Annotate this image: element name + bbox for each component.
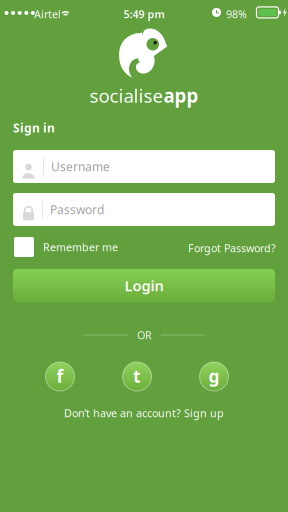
staticText: Airtel <box>34 7 61 21</box>
button[interactable]: Password <box>13 193 275 226</box>
staticText: Username <box>51 158 110 174</box>
button[interactable]: Login <box>13 269 275 302</box>
staticText: Remember me <box>43 240 118 254</box>
staticText: 5:49 pm <box>123 7 164 21</box>
staticText: Forgot Password? <box>188 241 276 255</box>
staticText: socialise <box>89 83 163 108</box>
button[interactable]: Sign in with Facebook <box>45 362 74 391</box>
button[interactable]: Remember me <box>14 237 118 257</box>
staticText: f <box>56 364 63 387</box>
staticText: Password <box>50 201 104 217</box>
staticText: Don't have an account? Sign up <box>64 406 224 420</box>
staticText: Sign in <box>13 120 55 136</box>
button[interactable]: Sign in with Twitter <box>122 362 151 391</box>
button[interactable]: Forgot Password? <box>188 241 276 255</box>
button[interactable]: Don't have an account? Sign up <box>64 406 224 420</box>
button[interactable]: Sign in with Google <box>199 362 228 391</box>
staticText: 98% <box>226 7 247 21</box>
staticText: g <box>208 364 219 387</box>
button[interactable]: Username <box>13 150 275 183</box>
staticText: Login <box>124 276 163 295</box>
staticText: app <box>163 83 198 108</box>
staticText: t <box>133 364 141 387</box>
staticText: OR <box>137 328 152 342</box>
